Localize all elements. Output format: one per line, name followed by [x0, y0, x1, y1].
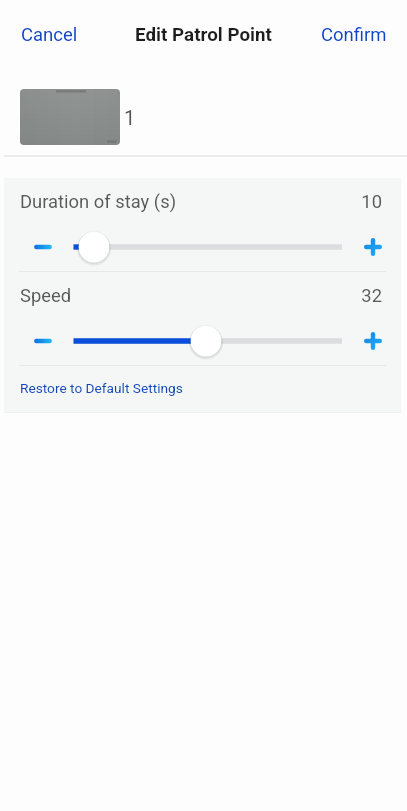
staticText: 1 [124, 106, 136, 129]
button[interactable]: Cancel [9, 15, 90, 55]
staticText: Confirm [321, 24, 387, 46]
staticText: 10 [0, 191, 382, 213]
staticText: 32 [0, 285, 382, 307]
staticText: Speed [20, 285, 72, 307]
button[interactable]: Increase [355, 323, 391, 359]
staticText: Duration of stay (s) [20, 191, 177, 213]
staticText: Restore to Default Settings [20, 380, 183, 396]
button[interactable]: Speed slider [60, 321, 360, 361]
button[interactable]: Duration of stay (s) slider [60, 227, 360, 267]
button[interactable]: Decrease [25, 229, 61, 265]
staticText: Edit Patrol Point [0, 24, 407, 46]
button[interactable]: Restore to Default Settings [4, 367, 401, 409]
button[interactable]: Confirm [309, 15, 399, 55]
button[interactable]: Increase [355, 229, 391, 265]
button[interactable]: Patrol point preview [20, 89, 120, 145]
button[interactable]: Decrease [25, 323, 61, 359]
staticText: Cancel [21, 24, 78, 46]
